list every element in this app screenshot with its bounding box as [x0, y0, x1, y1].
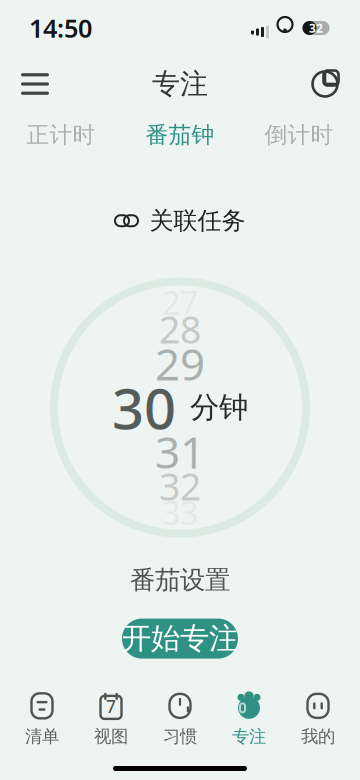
staticText: 开始专注 [122, 621, 238, 657]
button[interactable]: 正计时 [20, 113, 101, 157]
staticText: 视图 [94, 726, 128, 747]
button[interactable]: 番茄设置 [116, 557, 244, 603]
button[interactable]: 清单 [7, 690, 76, 750]
staticText: 清单 [25, 726, 59, 747]
staticText: 32 [309, 20, 323, 36]
staticText: 14:50 [29, 11, 92, 45]
button[interactable]: 倒计时 [258, 113, 339, 157]
staticText: 正计时 [26, 121, 95, 149]
staticText: 番茄设置 [130, 564, 230, 596]
staticText: 32 [159, 461, 201, 511]
staticText: 专注 [232, 726, 266, 747]
button[interactable]: 习惯 [145, 690, 214, 750]
button[interactable]: 番茄钟 [139, 113, 220, 157]
button[interactable]: 我的 [283, 690, 352, 750]
staticText: 27 [162, 281, 198, 324]
button[interactable]: 开始专注 [122, 619, 238, 659]
staticText: 分钟 [190, 389, 248, 425]
staticText: 30 [112, 370, 176, 445]
staticText: 31 [155, 422, 205, 481]
staticText: 33 [162, 491, 198, 534]
staticText: 28 [159, 304, 201, 354]
staticText: 习惯 [163, 726, 197, 747]
staticText: 关联任务 [149, 206, 245, 235]
button[interactable]: Menu [12, 61, 58, 107]
staticText: 番茄钟 [145, 121, 214, 149]
button[interactable]: 专注 [214, 690, 283, 750]
button[interactable]: 关联任务 [100, 198, 259, 243]
staticText: 我的 [301, 726, 335, 747]
staticText: 倒计时 [264, 121, 333, 149]
staticText: 29 [155, 334, 205, 393]
staticText: 专注 [152, 67, 208, 101]
button[interactable]: 7 [76, 690, 145, 750]
staticText: 7 [106, 695, 116, 718]
button[interactable]: Statistics [302, 61, 348, 107]
